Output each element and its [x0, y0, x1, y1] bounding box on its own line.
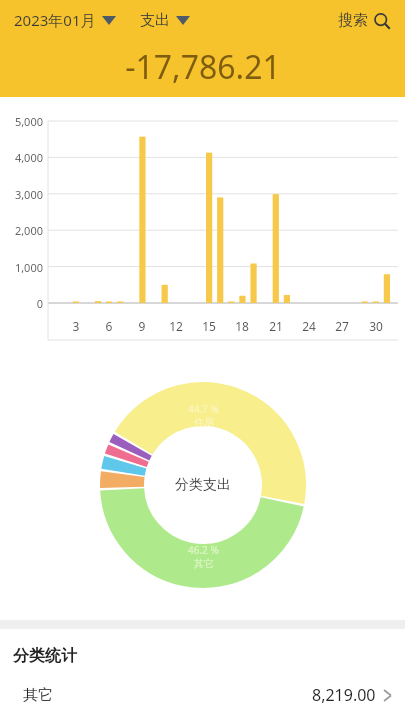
staticText: 2,000	[2, 223, 43, 238]
staticText: 2023年01月	[14, 10, 96, 30]
staticText: 15	[197, 318, 221, 334]
staticText: 27	[330, 318, 354, 334]
button[interactable]: 支出	[140, 5, 190, 36]
staticText: 支出	[140, 11, 170, 30]
staticText: -17,786.21	[125, 45, 281, 89]
staticText: 12	[164, 318, 188, 334]
staticText: 4,000	[2, 150, 43, 165]
staticText: 24	[297, 318, 321, 334]
button[interactable]: 其它	[0, 684, 405, 706]
button[interactable]: 搜索 Search	[338, 5, 391, 36]
staticText: 0	[2, 296, 43, 311]
staticText: 46.2 %	[188, 543, 219, 557]
staticText: 分类统计	[13, 646, 77, 666]
staticText: 分类支出	[175, 476, 231, 494]
staticText: 搜索	[338, 11, 368, 30]
staticText: 30	[364, 318, 388, 334]
staticText: 其它	[23, 686, 53, 705]
staticText: 6	[97, 318, 121, 334]
staticText: 1,000	[2, 260, 43, 275]
button[interactable]: 分类支出 pie chart	[100, 382, 306, 588]
staticText: 5,000	[2, 114, 43, 129]
staticText: 18	[230, 318, 254, 334]
staticText: 8,219.00	[312, 684, 376, 706]
staticText: 9	[130, 318, 154, 334]
staticText: 3,000	[2, 187, 43, 202]
staticText: 其它	[194, 557, 214, 570]
button[interactable]: 2023年01月	[14, 4, 116, 36]
staticText: 住房	[194, 416, 214, 429]
staticText: 3	[64, 318, 88, 334]
staticText: 21	[264, 318, 288, 334]
staticText: 44.7 %	[188, 402, 219, 416]
